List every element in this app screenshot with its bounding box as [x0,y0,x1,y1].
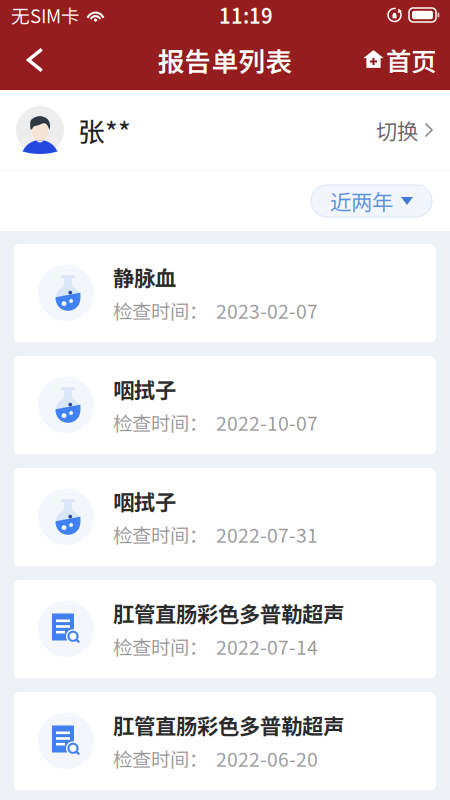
staticText: 2022-07-31 [208,520,318,548]
button[interactable]: 肛管直肠彩色多普勒超声 [14,580,436,678]
staticText: 2022-10-07 [208,408,318,436]
staticText: 11:19 [219,0,273,29]
button[interactable]: 张** [0,90,450,170]
staticText: 首页 [386,42,436,78]
staticText: 检查时间： [113,296,208,324]
staticText: 检查时间： [113,632,208,660]
staticText: 咽拭子 [113,486,176,516]
button[interactable]: 咽拭子 [14,468,436,566]
staticText: 静脉血 [113,262,176,292]
staticText: 检查时间： [113,408,208,436]
staticText: 报告单列表 [157,41,292,79]
staticText: 检查时间： [113,744,208,772]
staticText: 近两年 [330,186,393,216]
staticText: 张** [78,111,131,149]
staticText: 检查时间： [113,520,208,548]
staticText: 2022-07-14 [208,632,318,660]
staticText: 肛管直肠彩色多普勒超声 [113,710,344,740]
staticText: 切换 [376,115,418,145]
staticText: 肛管直肠彩色多普勒超声 [113,598,344,628]
staticText: 2023-02-07 [208,296,318,324]
button[interactable]: 返回 [0,37,56,83]
button[interactable]: 静脉血 [14,244,436,342]
staticText: 无SIM卡 [11,1,80,28]
button[interactable]: 首页 [351,37,450,83]
button[interactable]: 肛管直肠彩色多普勒超声 [14,692,436,790]
button[interactable]: 咽拭子 [14,356,436,454]
button[interactable]: 近两年 [311,185,432,217]
staticText: 2022-06-20 [208,744,318,772]
staticText: 咽拭子 [113,374,176,404]
